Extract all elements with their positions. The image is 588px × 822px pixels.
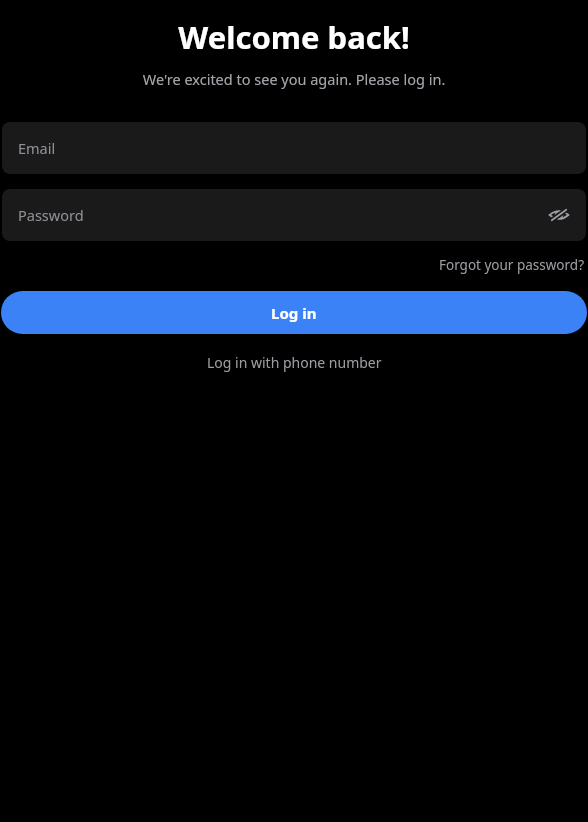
button[interactable]: Forgot your password?: [436, 253, 588, 277]
staticText: Password: [18, 205, 84, 225]
button[interactable]: Log in: [1, 291, 587, 334]
staticText: Welcome back!: [0, 16, 588, 58]
staticText: Log in with phone number: [207, 353, 382, 372]
staticText: Log in: [271, 303, 317, 323]
staticText: Forgot your password?: [439, 256, 585, 274]
button[interactable]: Show password: [544, 200, 574, 230]
staticText: Email: [18, 138, 56, 158]
button[interactable]: Email: [2, 122, 586, 174]
button[interactable]: Log in with phone number: [201, 350, 388, 375]
staticText: We're excited to see you again. Please l…: [0, 69, 588, 89]
button[interactable]: Password: [2, 189, 586, 241]
